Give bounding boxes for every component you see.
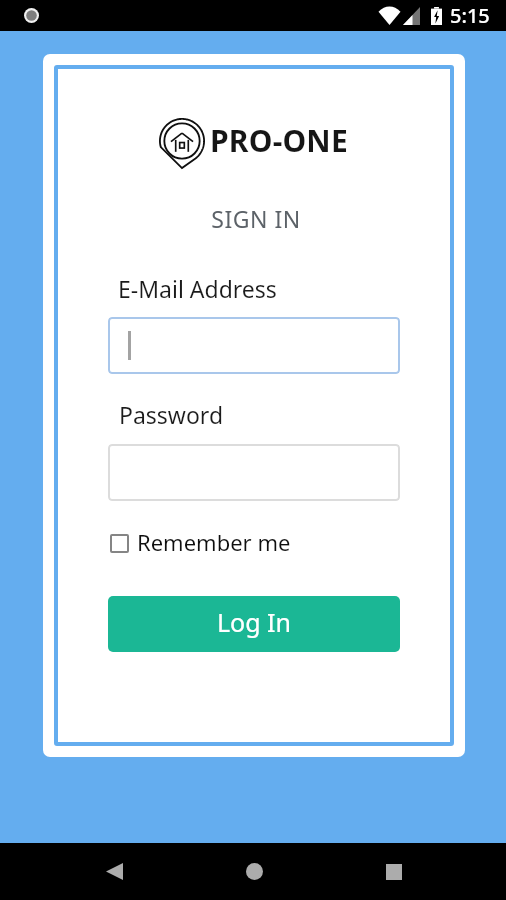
- staticText: 5:15: [450, 2, 490, 29]
- button[interactable]: E-Mail Address input: [108, 317, 400, 374]
- button[interactable]: Recent apps: [354, 843, 434, 900]
- staticText: Log In: [217, 605, 292, 639]
- staticText: Remember me: [137, 527, 291, 557]
- staticText: PRO-ONE: [210, 120, 348, 161]
- button[interactable]: Back: [74, 843, 154, 900]
- staticText: Password: [119, 399, 224, 430]
- button[interactable]: Password input: [108, 444, 400, 501]
- staticText: E-Mail Address: [118, 273, 277, 304]
- button[interactable]: Remember me: [110, 528, 291, 558]
- staticText: SIGN IN: [3, 203, 506, 234]
- button[interactable]: Home: [214, 843, 294, 900]
- button[interactable]: Log In: [108, 596, 400, 652]
